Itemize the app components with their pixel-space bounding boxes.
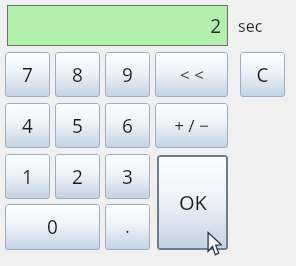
button[interactable]: 5 bbox=[55, 103, 100, 148]
button[interactable]: 4 bbox=[5, 103, 50, 148]
button[interactable]: 7 bbox=[5, 52, 50, 97]
staticText: 9 bbox=[122, 62, 133, 88]
staticText: 2 bbox=[72, 164, 83, 190]
button[interactable]: 3 bbox=[105, 154, 150, 199]
staticText: OK bbox=[179, 189, 207, 216]
staticText: 3 bbox=[122, 164, 133, 190]
staticText: 7 bbox=[22, 62, 33, 88]
button[interactable]: 2 bbox=[7, 5, 228, 46]
button[interactable]: 2 bbox=[55, 154, 100, 199]
button[interactable]: + / − bbox=[155, 103, 228, 148]
button[interactable]: . bbox=[105, 204, 150, 250]
staticText: 1 bbox=[22, 164, 33, 190]
staticText: 4 bbox=[22, 113, 33, 139]
button[interactable]: C bbox=[240, 52, 285, 97]
staticText: sec bbox=[238, 15, 263, 37]
staticText: 2 bbox=[210, 13, 221, 39]
staticText: 5 bbox=[72, 113, 83, 139]
button[interactable]: 9 bbox=[105, 52, 150, 97]
staticText: 0 bbox=[47, 214, 58, 240]
button[interactable]: 0 bbox=[5, 204, 100, 250]
other: Pointer bbox=[205, 231, 227, 257]
staticText: 8 bbox=[72, 62, 83, 88]
staticText: 6 bbox=[122, 113, 133, 139]
button[interactable]: < < bbox=[155, 52, 228, 97]
button[interactable]: 8 bbox=[55, 52, 100, 97]
button[interactable]: 6 bbox=[105, 103, 150, 148]
button[interactable]: 1 bbox=[5, 154, 50, 199]
button[interactable]: OK bbox=[157, 155, 228, 250]
staticText: < < bbox=[180, 63, 204, 86]
staticText: . bbox=[125, 216, 130, 238]
staticText: C bbox=[256, 62, 269, 88]
staticText: + / − bbox=[174, 114, 209, 137]
